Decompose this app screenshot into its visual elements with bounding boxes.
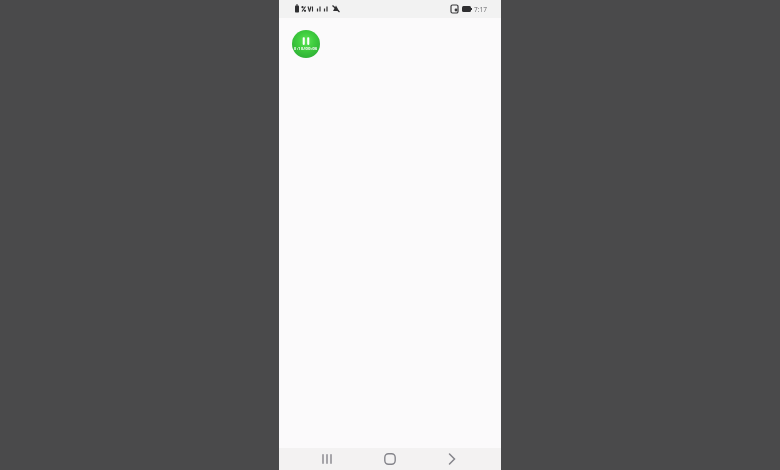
button[interactable]: 0:10/00:06 [292,30,320,58]
button[interactable] [376,448,404,470]
button[interactable] [313,448,341,470]
staticText: 0:10/00:06 [294,46,318,51]
button[interactable] [438,448,466,470]
staticText: 7:17 [474,5,487,14]
